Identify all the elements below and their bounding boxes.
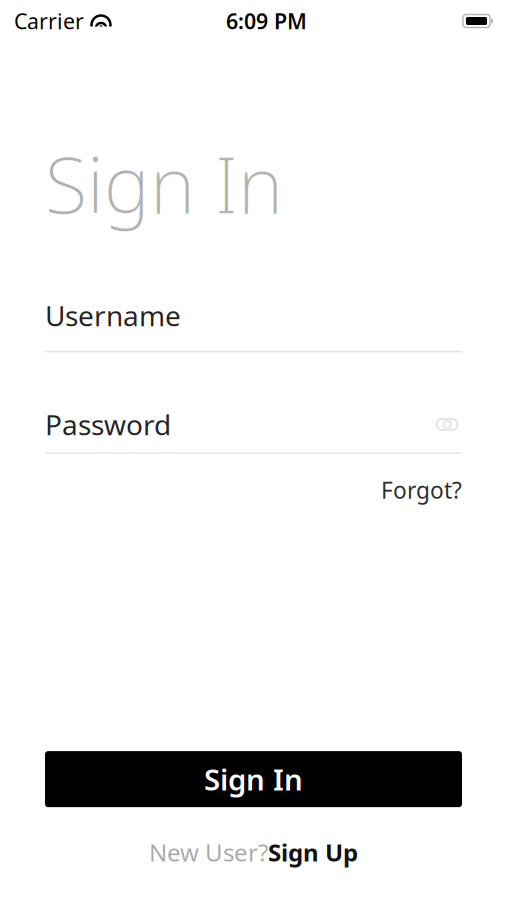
button[interactable]: New User? (0, 828, 507, 876)
staticText: Carrier (14, 7, 84, 35)
staticText: New User? (149, 836, 268, 868)
staticText: Forgot? (381, 475, 462, 505)
button[interactable]: Sign In (45, 751, 462, 807)
button[interactable]: Show password (432, 411, 462, 437)
staticText: Username (45, 297, 181, 334)
staticText: Sign In (204, 760, 303, 799)
staticText: Password (45, 406, 171, 443)
staticText: Sign Up (268, 836, 358, 868)
staticText: 6:09 PM (226, 7, 307, 35)
button[interactable]: Forgot? (381, 475, 462, 505)
staticText: Sign In (45, 132, 283, 235)
